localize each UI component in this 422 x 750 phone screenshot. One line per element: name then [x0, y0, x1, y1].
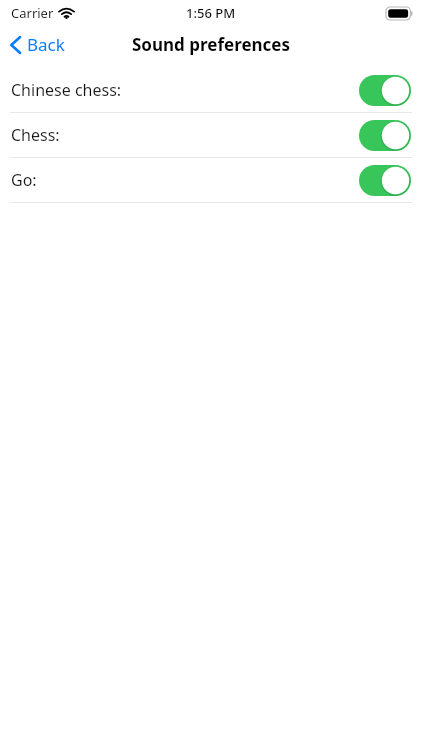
button[interactable]: Chess:	[0, 113, 422, 157]
button[interactable]: Toggle sound	[359, 75, 411, 106]
button[interactable]: Toggle sound	[359, 120, 411, 151]
staticText: Chess:	[11, 124, 60, 146]
button[interactable]: Toggle sound	[359, 165, 411, 196]
staticText: Carrier	[11, 4, 54, 22]
staticText: Sound preferences	[132, 33, 291, 56]
staticText: 1:56 PM	[186, 4, 236, 22]
button[interactable]: Back	[0, 29, 77, 60]
button[interactable]: Go:	[0, 158, 422, 202]
staticText: Chinese chess:	[11, 79, 122, 101]
staticText: Go:	[11, 169, 37, 191]
button[interactable]: Chinese chess:	[0, 68, 422, 112]
staticText: Back	[27, 33, 65, 56]
